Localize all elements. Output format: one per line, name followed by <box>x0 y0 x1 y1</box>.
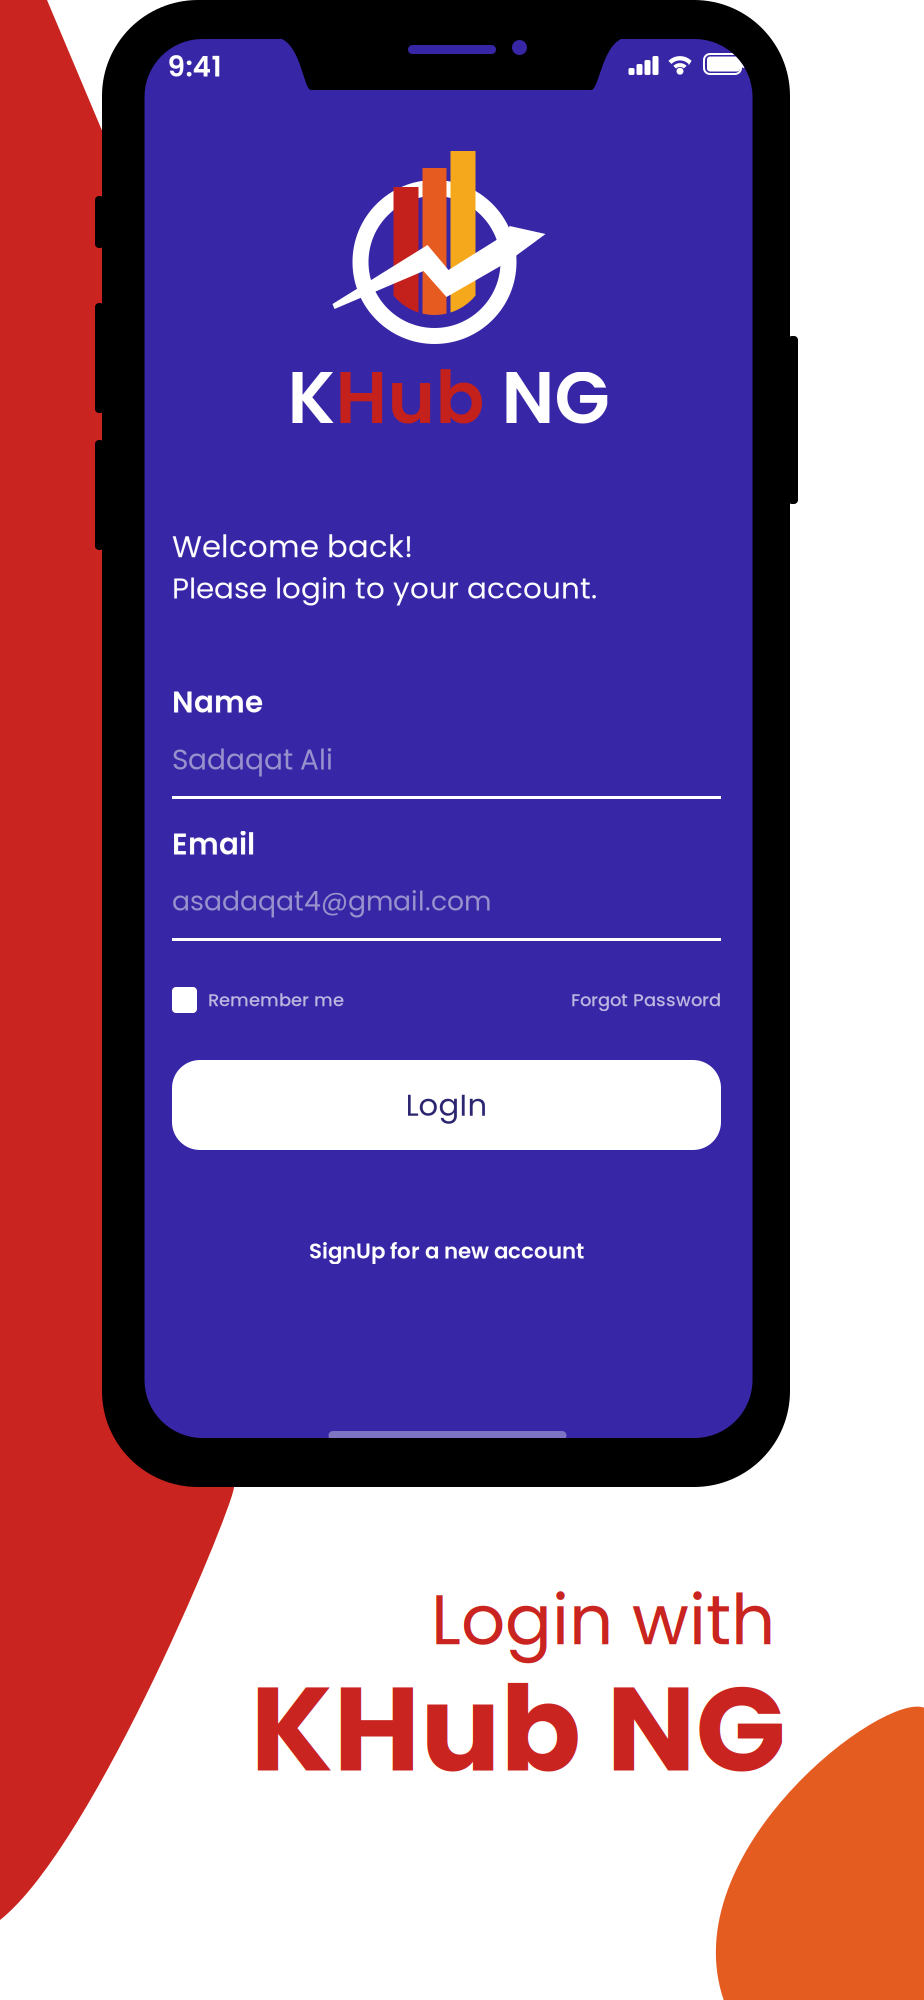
staticText: K <box>287 347 335 448</box>
staticText: Welcome back! <box>172 525 413 568</box>
staticText: LogIn <box>405 1083 487 1126</box>
staticText: Login with <box>431 1571 775 1668</box>
staticText: Remember me <box>208 987 344 1013</box>
staticText: SignUp for a new account <box>309 1236 584 1266</box>
staticText: Please login to your account. <box>172 568 597 609</box>
button[interactable]: LogIn <box>172 1060 721 1150</box>
staticText: Sadaqat Ali <box>172 740 333 779</box>
staticText: 9:41 <box>167 47 221 86</box>
staticText: Email <box>172 824 255 865</box>
staticText: asadaqat4@gmail.com <box>172 882 491 920</box>
button[interactable]: Forgot Password <box>523 983 721 1017</box>
staticText: Forgot Password <box>571 987 721 1013</box>
staticText: Hub <box>335 347 484 448</box>
staticText: NG <box>484 347 609 448</box>
button[interactable]: SignUp for a new account <box>172 1231 721 1271</box>
button[interactable]: Remember me <box>172 983 422 1017</box>
staticText: Name <box>172 682 263 723</box>
staticText: KHub NG <box>250 1646 785 1812</box>
